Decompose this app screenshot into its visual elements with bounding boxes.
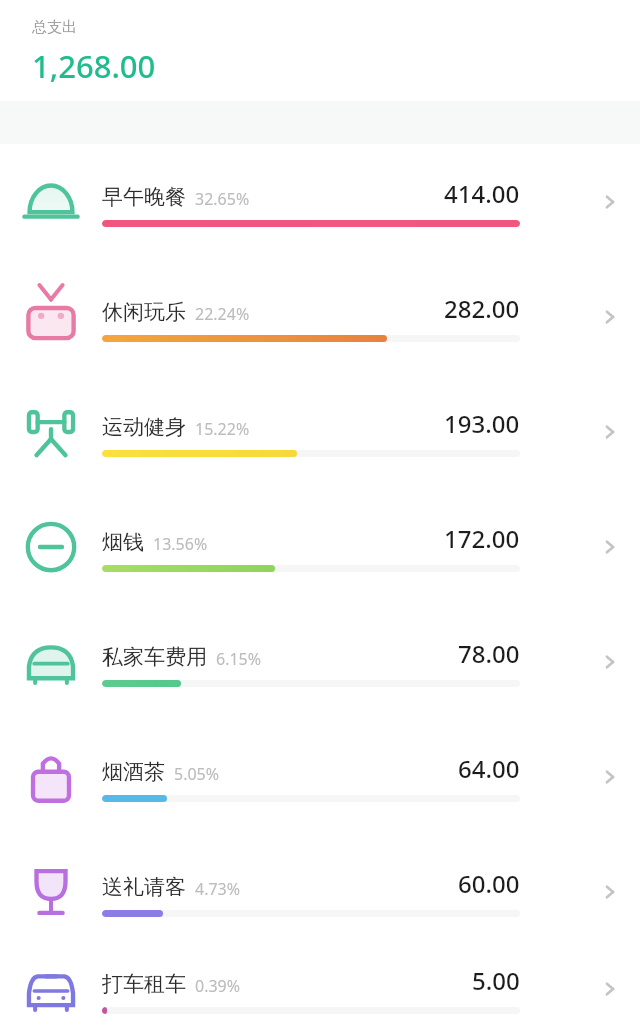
staticText: 1,268.00 [32, 45, 156, 87]
staticText: 烟钱 [102, 529, 144, 555]
other: Details [580, 719, 640, 834]
other: Details [580, 374, 640, 489]
button[interactable]: 运动健身 [0, 374, 640, 489]
staticText: 运动健身 [102, 414, 186, 440]
staticText: 休闲玩乐 [102, 299, 186, 325]
staticText: 22.24% [195, 303, 250, 325]
other: Details [580, 949, 640, 1029]
button[interactable]: 私家车费用 [0, 604, 640, 719]
other: Details [580, 834, 640, 949]
other: Details [580, 489, 640, 604]
staticText: 282.00 [444, 292, 520, 325]
button[interactable]: 打车租车 [0, 949, 640, 1029]
staticText: 总支出 [32, 18, 77, 37]
staticText: 6.15% [216, 648, 262, 670]
button[interactable]: 烟钱 [0, 489, 640, 604]
staticText: 60.00 [458, 867, 520, 900]
staticText: 5.05% [174, 763, 220, 785]
staticText: 4.73% [195, 878, 241, 900]
staticText: 私家车费用 [102, 644, 207, 670]
staticText: 193.00 [444, 407, 520, 440]
staticText: 172.00 [444, 522, 520, 555]
staticText: 414.00 [444, 177, 520, 210]
button[interactable]: 休闲玩乐 [0, 259, 640, 374]
button[interactable]: 送礼请客 [0, 834, 640, 949]
staticText: 送礼请客 [102, 874, 186, 900]
staticText: 烟酒茶 [102, 759, 165, 785]
other: Details [580, 604, 640, 719]
staticText: 13.56% [153, 533, 208, 555]
staticText: 15.22% [195, 418, 250, 440]
button[interactable]: 早午晚餐 [0, 144, 640, 259]
staticText: 0.39% [195, 975, 241, 997]
staticText: 64.00 [458, 752, 520, 785]
other: Details [580, 144, 640, 259]
button[interactable]: 烟酒茶 [0, 719, 640, 834]
staticText: 78.00 [458, 637, 520, 670]
staticText: 早午晚餐 [102, 184, 186, 210]
staticText: 5.00 [472, 964, 520, 997]
staticText: 打车租车 [102, 971, 186, 997]
other: Details [580, 259, 640, 374]
staticText: 32.65% [195, 188, 250, 210]
